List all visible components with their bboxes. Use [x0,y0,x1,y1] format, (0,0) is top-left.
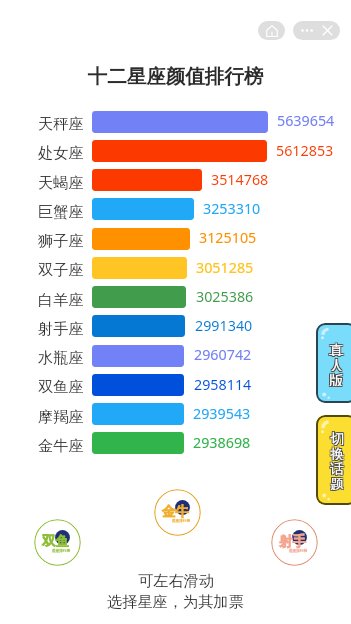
staticText: 话 [329,459,344,474]
staticText: 真 [330,341,346,356]
staticText: 版 [330,370,346,385]
staticText: 换 [330,444,345,459]
staticText: 可左右滑动 [138,571,214,590]
button[interactable]: 金牛座 2938698 [92,432,184,454]
staticText: 天秤座 [38,114,84,133]
button[interactable]: More options and close [293,21,340,40]
button[interactable]: 水瓶座 [29,342,84,372]
button[interactable]: 摩羯座 [29,401,84,431]
staticText: 2939543 [193,404,251,423]
staticText: 天蝎座 [38,173,84,192]
staticText: 白羊座 [38,290,84,309]
staticText: 切 [330,430,345,445]
button[interactable]: 巨蟹座 3253310 [92,198,194,220]
button[interactable]: 射手座 2991340 [92,315,185,337]
staticText: 切 [329,430,344,445]
staticText: 版 [328,372,344,387]
staticText: 换 [330,445,345,460]
staticText: 5639654 [277,111,335,130]
staticText: 十二星座颜值排行榜 [0,64,351,89]
staticText: 话 [331,461,346,476]
staticText: 版 [329,372,345,387]
staticText: 3253310 [203,199,261,218]
staticText: 双鱼座 [38,377,84,396]
button[interactable]: 金牛座 [154,489,201,536]
staticText: 星座排行榜 [172,519,190,524]
staticText: 切 [331,431,346,446]
button[interactable]: 金牛座 [29,430,84,460]
staticText: 话 [330,459,345,474]
staticText: 题 [330,474,345,489]
staticText: 双子座 [38,260,84,279]
button[interactable]: 双子座 [29,254,84,284]
staticText: 真 [330,340,346,355]
button[interactable]: 射手座 [271,519,318,566]
staticText: 人 [328,357,344,372]
button[interactable]: 处女座 [29,137,84,167]
staticText: 话 [330,461,345,476]
staticText: 狮子座 [38,231,84,250]
staticText: 切 [331,429,346,444]
staticText: 5612853 [276,141,334,160]
staticText: 真 [328,340,344,355]
staticText: 射手座 [38,319,84,338]
button[interactable]: 切 [316,415,351,505]
button[interactable]: 双鱼座 [29,371,84,401]
staticText: 版 [329,370,345,385]
staticText: 切 [330,431,345,446]
staticText: 3025386 [196,287,254,306]
staticText: 换 [331,445,346,460]
staticText: 真 [330,342,346,357]
staticText: 人 [330,357,346,372]
button[interactable]: 真 [316,323,351,403]
staticText: 话 [331,459,346,474]
button[interactable]: 摩羯座 2939543 [92,403,184,425]
staticText: 星座排行榜 [52,549,70,554]
button[interactable]: 白羊座 [29,284,84,314]
staticText: 人 [328,355,344,370]
staticText: 题 [330,475,345,490]
staticText: 话 [331,460,346,475]
button[interactable]: 狮子座 3125105 [92,228,190,250]
staticText: 双鱼 [42,533,69,550]
staticText: 换 [329,445,344,460]
staticText: 题 [331,476,346,491]
staticText: 水瓶座 [38,348,84,367]
staticText: 题 [331,475,346,490]
staticText: 3125105 [199,228,257,247]
staticText: 切 [329,429,344,444]
staticText: 2938698 [193,433,251,452]
staticText: 人 [328,356,344,371]
staticText: 选择星座，为其加票 [107,592,244,611]
button[interactable]: 处女座 5612853 [92,140,267,162]
button[interactable]: 天秤座 5639654 [92,111,268,133]
staticText: 题 [331,474,346,489]
staticText: 人 [330,356,346,371]
staticText: 真 [329,340,345,355]
button[interactable]: 巨蟹座 [29,196,84,226]
button[interactable]: Home [258,21,285,40]
staticText: 换 [331,446,346,461]
button[interactable]: 天秤座 [29,108,84,138]
staticText: 人 [329,357,345,372]
staticText: 真 [328,342,344,357]
button[interactable]: 射手座 [29,313,84,343]
button[interactable]: 天蝎座 [29,167,84,197]
button[interactable]: 水瓶座 2960742 [92,345,184,367]
button[interactable]: 双子座 3051285 [92,257,187,279]
staticText: 题 [329,476,344,491]
button[interactable]: 天蝎座 3514768 [92,169,202,191]
button[interactable]: 狮子座 [29,225,84,255]
staticText: 版 [328,370,344,385]
staticText: 人 [329,356,345,371]
staticText: 换 [329,446,344,461]
staticText: 星座排行榜 [289,549,307,554]
staticText: 2960742 [194,345,252,364]
staticText: 话 [329,460,344,475]
button[interactable]: 双鱼座 2958114 [92,374,184,396]
button[interactable]: 双鱼座 [34,519,81,566]
button[interactable]: 白羊座 3025386 [92,286,186,308]
staticText: 话 [329,461,344,476]
staticText: 话 [330,460,345,475]
staticText: 版 [330,371,346,386]
